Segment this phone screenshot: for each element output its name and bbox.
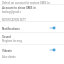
staticText: Vibrate bbox=[2, 49, 12, 53]
button[interactable]: Vibrate bbox=[0, 45, 64, 61]
button[interactable]: Toggle bbox=[49, 46, 58, 54]
staticText: Ringtone for msg bbox=[2, 40, 22, 43]
staticText: NOTIFICATION SETT bbox=[2, 19, 26, 22]
staticText: Sound bbox=[2, 35, 11, 39]
staticText: backup@gmail.c bbox=[2, 11, 22, 14]
button[interactable]: Toggle bbox=[49, 24, 58, 32]
staticText: Select an account to restore SMS to bbox=[2, 1, 50, 5]
button[interactable]: Account to show SMS in bbox=[0, 6, 64, 21]
button[interactable]: Notifications bbox=[0, 23, 64, 32]
button[interactable]: Sound bbox=[0, 33, 64, 44]
staticText: Account to show SMS in bbox=[2, 6, 36, 10]
staticText: Also vibrate bbox=[2, 56, 16, 59]
staticText: Notifications bbox=[2, 27, 20, 31]
